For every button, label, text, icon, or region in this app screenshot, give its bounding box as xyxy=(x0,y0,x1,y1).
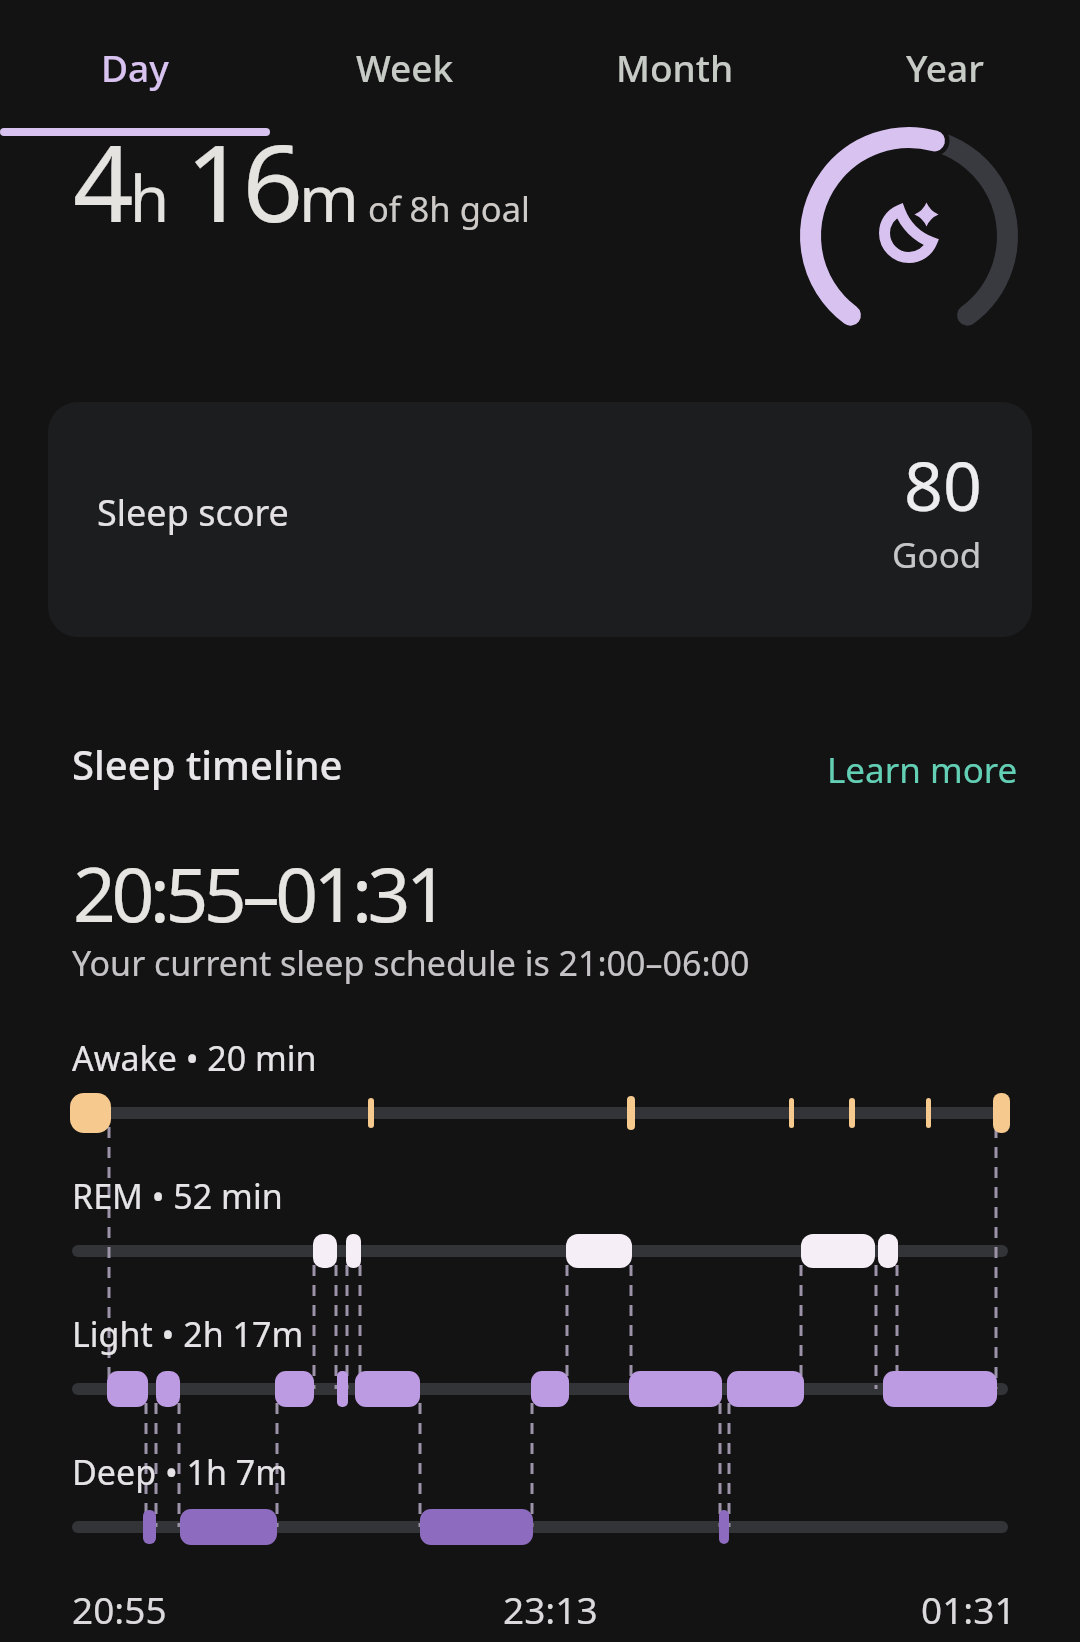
staticText: Good xyxy=(892,531,982,579)
staticText: Deep • 1h 7m xyxy=(72,1449,288,1495)
staticText: Year xyxy=(906,42,984,92)
button[interactable]: Month xyxy=(540,0,810,134)
button[interactable]: Year xyxy=(810,0,1080,134)
staticText: Light • 2h 17m xyxy=(72,1311,304,1357)
staticText: 20:55–01:31 xyxy=(73,842,445,944)
staticText: REM • 52 min xyxy=(72,1173,283,1219)
staticText: Week xyxy=(356,42,454,92)
staticText: Sleep score xyxy=(97,488,289,537)
staticText: Sleep timeline xyxy=(72,737,343,791)
staticText: 01:31 xyxy=(921,1584,1016,1634)
staticText: 23:13 xyxy=(503,1584,598,1634)
staticText: Awake • 20 min xyxy=(72,1035,317,1081)
button[interactable]: Learn more xyxy=(827,746,1018,794)
staticText: Month xyxy=(616,42,734,92)
staticText: 80 xyxy=(904,438,982,531)
staticText: Your current sleep schedule is 21:00–06:… xyxy=(72,940,750,986)
button[interactable]: Week xyxy=(270,0,540,134)
staticText: 4h 16m of 8h goal xyxy=(73,109,530,253)
button[interactable]: Day xyxy=(0,0,270,134)
staticText: Learn more xyxy=(827,746,1018,794)
button[interactable]: Sleep score xyxy=(48,402,1032,637)
staticText: 20:55 xyxy=(72,1584,167,1634)
staticText: Day xyxy=(101,42,169,92)
